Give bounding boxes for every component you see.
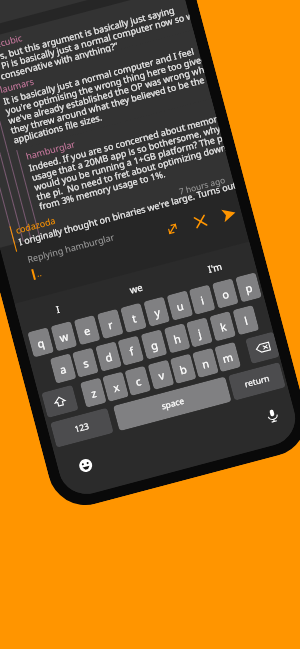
button[interactable]: u xyxy=(166,290,193,321)
staticText: m xyxy=(221,349,235,366)
staticText: h xyxy=(172,331,183,347)
staticText: space xyxy=(160,395,185,412)
staticText: I'm xyxy=(206,260,223,276)
staticText: g xyxy=(149,337,159,353)
button[interactable]: a xyxy=(50,353,77,384)
button[interactable]: laumars xyxy=(0,30,216,179)
staticText: f xyxy=(128,343,135,359)
button[interactable]: y xyxy=(143,296,170,327)
staticText: t xyxy=(130,310,138,326)
button[interactable]: k xyxy=(209,311,236,341)
staticText: 5 hours ago xyxy=(142,38,191,61)
button[interactable]: Emoji xyxy=(74,454,96,476)
button[interactable]: we xyxy=(94,267,178,309)
staticText: n xyxy=(200,355,211,371)
button[interactable]: t xyxy=(120,303,147,333)
staticText: elsewhere in the comments about the appl… xyxy=(0,0,86,4)
button[interactable]: e xyxy=(74,315,101,345)
button[interactable]: d xyxy=(95,341,122,372)
button[interactable]: c xyxy=(124,366,151,396)
staticText: u xyxy=(175,298,185,314)
staticText: I xyxy=(55,302,62,316)
staticText: i xyxy=(199,292,206,308)
staticText: we xyxy=(128,281,144,297)
button[interactable]: Space xyxy=(113,376,232,431)
button[interactable]: i xyxy=(189,284,216,315)
button[interactable]: Voice input xyxy=(262,404,284,426)
staticText: w xyxy=(58,328,70,345)
button[interactable]: Shift xyxy=(41,385,79,418)
staticText: laumars xyxy=(0,75,35,95)
button[interactable]: Expand xyxy=(161,218,183,240)
button[interactable]: s xyxy=(72,347,99,378)
staticText: k xyxy=(218,319,228,335)
staticText: I originally thought on binaries we're l… xyxy=(17,179,236,247)
button[interactable]: f xyxy=(117,335,144,366)
button[interactable]: m xyxy=(214,342,241,372)
staticText: x xyxy=(111,379,121,395)
button[interactable]: x xyxy=(102,371,129,402)
button[interactable]: n xyxy=(192,348,219,378)
button[interactable]: codazoda xyxy=(0,166,237,257)
button[interactable]: r xyxy=(97,309,124,339)
staticText: return xyxy=(243,372,271,390)
staticText: .. xyxy=(35,266,43,279)
staticText: 19 minutes ago xyxy=(146,105,209,132)
staticText: p xyxy=(243,280,254,296)
staticText: q xyxy=(35,335,46,351)
staticText: a xyxy=(58,361,69,377)
staticText: hamburglar xyxy=(24,137,77,162)
staticText: s xyxy=(81,355,91,371)
staticText: b xyxy=(178,361,189,377)
staticText: z xyxy=(89,385,99,401)
staticText: 7 hours ago xyxy=(178,174,227,197)
staticText: j xyxy=(196,325,203,341)
button[interactable]: q xyxy=(27,327,54,358)
staticText: codazoda xyxy=(14,214,57,236)
staticText: r xyxy=(106,317,115,332)
button[interactable]: Return xyxy=(228,362,286,401)
button[interactable]: l xyxy=(232,305,259,335)
staticText: v xyxy=(157,367,166,383)
button[interactable]: o xyxy=(212,278,239,309)
button[interactable]: Backspace xyxy=(245,331,280,364)
button[interactable]: hamburglar xyxy=(0,99,234,248)
button[interactable]: Numbers xyxy=(50,408,114,448)
button[interactable]: I xyxy=(16,288,100,330)
button[interactable]: Send xyxy=(218,203,240,225)
button[interactable]: elsewhere in the comments about the appl… xyxy=(0,0,179,38)
button[interactable]: p xyxy=(235,272,262,303)
staticText: Indeed. If you are so concerned about me… xyxy=(27,112,229,213)
button[interactable]: I'm xyxy=(172,246,256,288)
staticText: Replying hamburglar xyxy=(26,230,116,265)
button[interactable]: v xyxy=(147,359,174,390)
button[interactable]: b xyxy=(170,353,197,384)
staticText: “Yess, but this argument is basically ju… xyxy=(0,0,194,86)
button[interactable]: h xyxy=(164,323,191,354)
staticText: o xyxy=(220,286,231,302)
staticText: y xyxy=(152,304,162,320)
staticText: bebecubic xyxy=(0,31,24,54)
button[interactable]: g xyxy=(140,329,167,360)
button[interactable]: j xyxy=(186,317,213,348)
staticText: l xyxy=(243,313,249,328)
button[interactable]: z xyxy=(80,377,107,408)
button[interactable]: Cancel xyxy=(190,210,212,232)
button[interactable]: w xyxy=(50,321,77,351)
staticText: It is basically just a normal computer a… xyxy=(2,43,210,146)
staticText: 123 xyxy=(73,420,91,435)
staticText: e xyxy=(82,322,92,339)
staticText: d xyxy=(103,349,114,365)
staticText: c xyxy=(134,373,143,389)
button[interactable]: bebecubic xyxy=(0,0,199,112)
